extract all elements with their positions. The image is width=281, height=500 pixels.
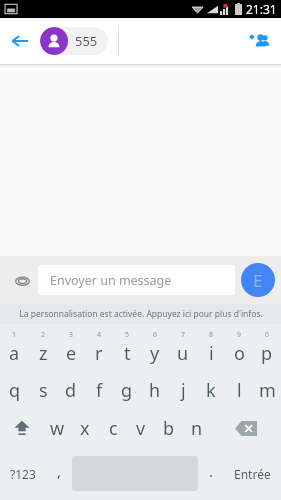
- staticText: 7: [181, 330, 186, 340]
- staticText: o: [234, 341, 245, 366]
- staticText: Envoyer un message: [50, 272, 172, 289]
- staticText: n: [191, 416, 203, 441]
- button[interactable]: 555: [40, 27, 108, 55]
- staticText: s: [39, 378, 48, 403]
- staticText: ,: [57, 461, 62, 481]
- staticText: 8: [209, 330, 214, 340]
- button[interactable]: Attach: [6, 264, 38, 296]
- staticText: e: [66, 341, 77, 366]
- button[interactable]: Shift: [0, 409, 43, 447]
- staticText: 0: [265, 330, 270, 340]
- button[interactable]: Entrée: [224, 447, 281, 500]
- staticText: 1: [12, 330, 17, 340]
- staticText: d: [65, 378, 77, 403]
- staticText: w: [50, 416, 65, 441]
- staticText: 9: [237, 330, 242, 340]
- button[interactable]: 1: [0, 327, 29, 371]
- staticText: 2: [41, 330, 46, 340]
- button[interactable]: 2: [29, 327, 57, 371]
- staticText: j: [181, 378, 186, 403]
- button[interactable]: .: [198, 447, 224, 500]
- staticText: 6: [153, 330, 158, 340]
- button[interactable]: d: [57, 371, 85, 409]
- staticText: 4: [97, 330, 102, 340]
- button[interactable]: n: [183, 409, 211, 447]
- staticText: i: [209, 341, 214, 366]
- button[interactable]: 8: [197, 327, 225, 371]
- button[interactable]: 5: [113, 327, 141, 371]
- button[interactable]: l: [225, 371, 253, 409]
- staticText: 5: [125, 330, 130, 340]
- button[interactable]: s: [29, 371, 57, 409]
- staticText: Entrée: [234, 466, 271, 482]
- staticText: 21:31: [246, 1, 277, 17]
- button[interactable]: g: [113, 371, 141, 409]
- button[interactable]: w: [43, 409, 71, 447]
- staticText: a: [9, 341, 20, 366]
- button[interactable]: f: [85, 371, 113, 409]
- staticText: u: [177, 341, 189, 366]
- button[interactable]: c: [99, 409, 127, 447]
- staticText: t: [124, 341, 131, 366]
- button[interactable]: h: [141, 371, 169, 409]
- button[interactable]: m: [253, 371, 281, 409]
- staticText: h: [149, 378, 161, 403]
- button[interactable]: Add people: [237, 19, 281, 63]
- button[interactable]: x: [71, 409, 99, 447]
- button[interactable]: k: [197, 371, 225, 409]
- staticText: g: [121, 378, 133, 403]
- button[interactable]: 7: [169, 327, 197, 371]
- staticText: ?123: [10, 466, 36, 482]
- button[interactable]: Back: [0, 21, 40, 61]
- staticText: z: [39, 341, 48, 366]
- button[interactable]: La personnalisation est activée. Appuyez…: [0, 304, 281, 324]
- staticText: m: [259, 378, 276, 403]
- staticText: c: [109, 416, 118, 441]
- staticText: La personnalisation est activée. Appuyez…: [19, 308, 263, 320]
- button[interactable]: 4: [85, 327, 113, 371]
- staticText: f: [96, 378, 103, 403]
- staticText: .: [209, 461, 214, 481]
- button[interactable]: j: [169, 371, 197, 409]
- button[interactable]: 3: [57, 327, 85, 371]
- staticText: 3: [69, 330, 74, 340]
- button[interactable]: Envoyer un message: [38, 265, 235, 295]
- staticText: x: [80, 416, 90, 441]
- staticText: 555: [75, 32, 98, 50]
- staticText: r: [95, 341, 103, 366]
- staticText: v: [136, 416, 146, 441]
- button[interactable]: 9: [225, 327, 253, 371]
- button[interactable]: ?123: [0, 447, 46, 500]
- staticText: E: [253, 269, 263, 292]
- button[interactable]: q: [0, 371, 29, 409]
- staticText: k: [206, 378, 216, 403]
- button[interactable]: b: [155, 409, 183, 447]
- staticText: l: [237, 378, 242, 403]
- staticText: p: [261, 341, 273, 366]
- button[interactable]: v: [127, 409, 155, 447]
- button[interactable]: Send: [241, 263, 275, 297]
- button[interactable]: Backspace: [211, 409, 281, 447]
- staticText: b: [163, 416, 175, 441]
- button[interactable]: 0: [253, 327, 281, 371]
- button[interactable]: 6: [141, 327, 169, 371]
- staticText: y: [150, 341, 160, 366]
- staticText: q: [9, 378, 21, 403]
- button[interactable]: ,: [46, 447, 72, 500]
